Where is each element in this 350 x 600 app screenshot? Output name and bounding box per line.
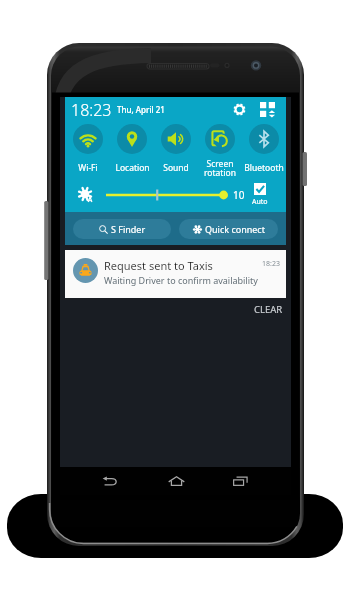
staticText: Bluetooth (244, 162, 284, 174)
staticText: CLEAR (254, 303, 283, 316)
staticText: 18:23 (262, 259, 280, 269)
button[interactable]: Home (156, 467, 196, 495)
button[interactable]: Location (110, 122, 154, 177)
button[interactable]: Back (90, 467, 130, 495)
staticText: Auto (252, 197, 268, 207)
button[interactable]: Request sent to Taxis (65, 250, 286, 298)
button[interactable]: Recents (221, 467, 261, 495)
button[interactable]: Settings (233, 103, 246, 116)
button[interactable]: Auto (252, 183, 268, 207)
button[interactable]: S Finder (73, 219, 171, 239)
button[interactable]: Edit quick settings (260, 102, 275, 117)
staticText: Sound (163, 162, 189, 174)
button[interactable]: CLEAR (251, 298, 286, 321)
staticText: Quick connect (205, 223, 265, 235)
button[interactable]: Quick connect (179, 219, 278, 239)
button[interactable]: Sound (154, 122, 198, 177)
staticText: 10 (233, 188, 245, 202)
button[interactable]: Screen rotation (198, 122, 242, 177)
staticText: Waiting Driver to confirm availability (104, 274, 258, 286)
button[interactable]: Wi-Fi (65, 122, 110, 177)
staticText: S Finder (111, 223, 146, 235)
staticText: Location (115, 162, 150, 174)
button[interactable]: Bluetooth (242, 122, 286, 177)
staticText: Request sent to Taxis (104, 258, 213, 273)
staticText: 18:23 (71, 99, 112, 121)
staticText: Screen rotation (204, 158, 236, 177)
staticText: Thu, April 21 (117, 104, 165, 115)
button[interactable]: Brightness (106, 189, 228, 201)
staticText: Wi-Fi (78, 162, 98, 174)
